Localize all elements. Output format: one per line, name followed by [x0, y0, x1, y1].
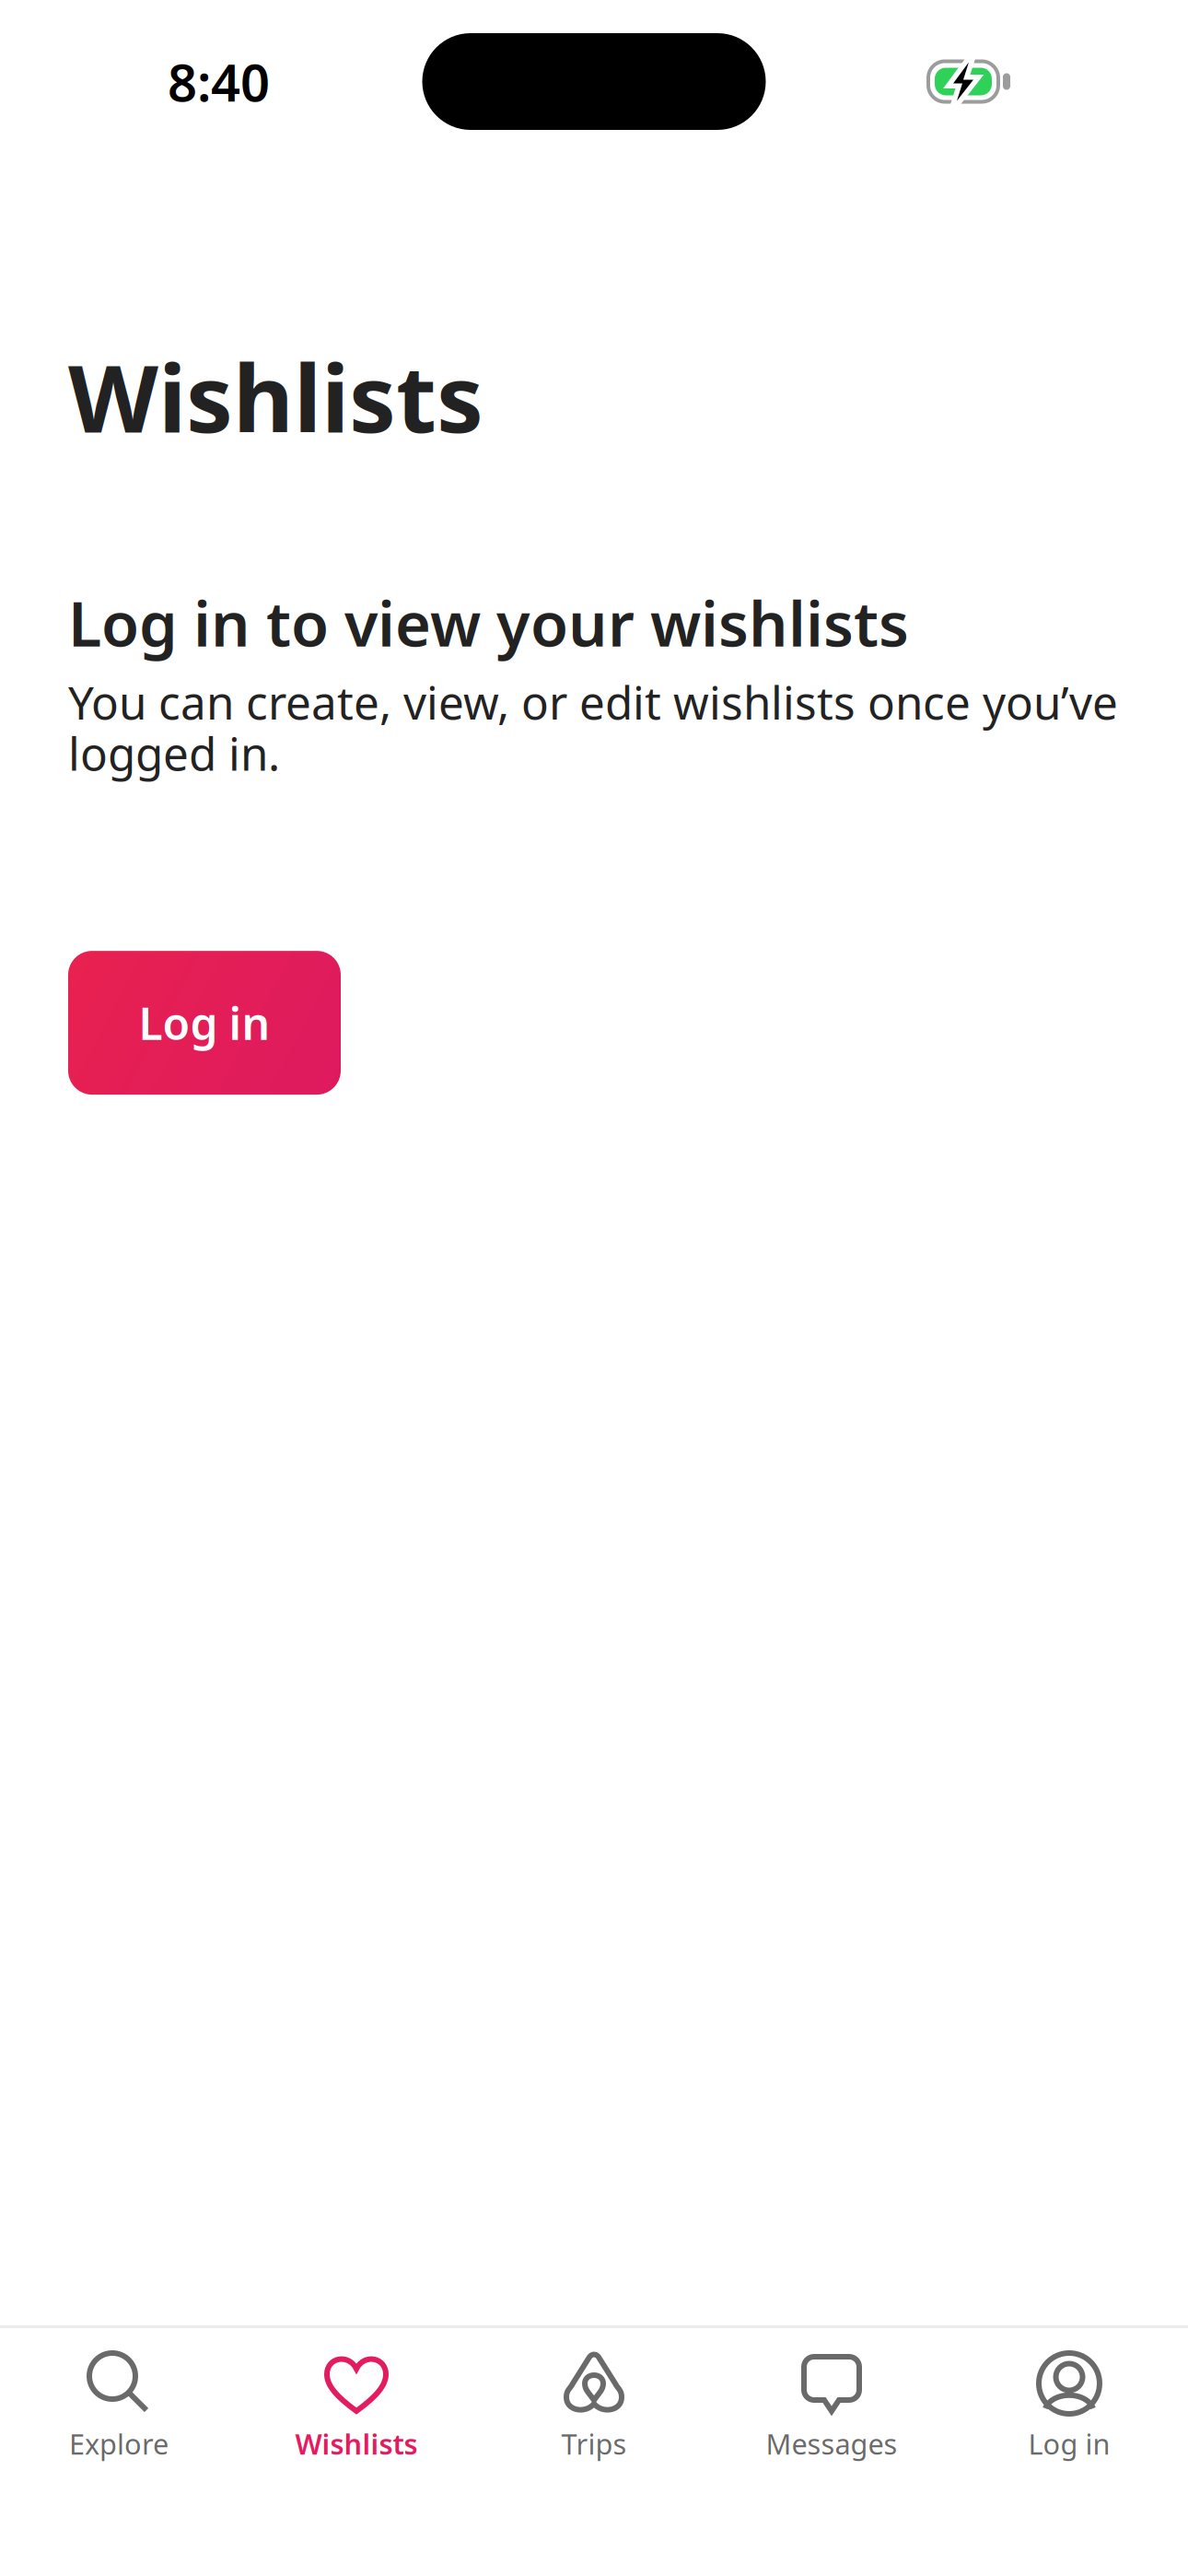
button[interactable]: Log in: [950, 2328, 1188, 2462]
staticText: Log in: [1028, 2425, 1110, 2462]
staticText: Explore: [69, 2425, 169, 2462]
staticText: You can create, view, or edit wishlists …: [68, 672, 1118, 783]
staticText: Log in: [139, 993, 270, 1052]
button[interactable]: Explore: [0, 2328, 238, 2462]
button[interactable]: Wishlists: [238, 2328, 475, 2462]
button[interactable]: Messages: [713, 2328, 950, 2462]
button[interactable]: Log in: [68, 951, 341, 1095]
staticText: 8:40: [168, 47, 270, 116]
staticText: Wishlists: [295, 2425, 418, 2462]
staticText: Trips: [561, 2425, 627, 2462]
button[interactable]: Trips: [475, 2328, 713, 2462]
staticText: Wishlists: [68, 334, 483, 458]
staticText: Log in to view your wishlists: [68, 582, 909, 663]
staticText: Messages: [766, 2425, 897, 2462]
